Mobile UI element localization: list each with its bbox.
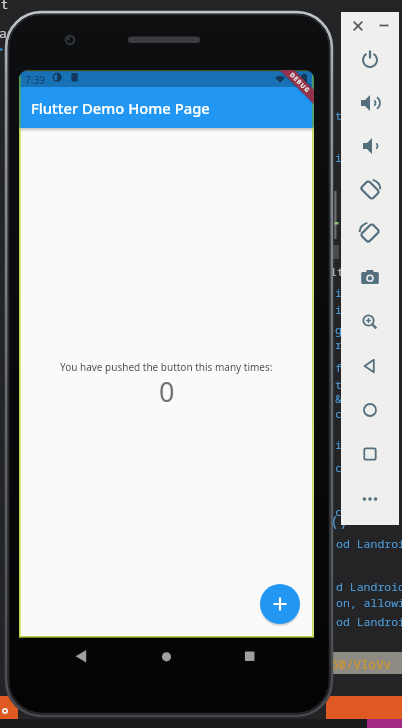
button[interactable] (353, 129, 387, 163)
staticText: c (335, 504, 342, 520)
staticText: ai (0, 24, 15, 42)
staticText: Flutter Demo Home Page (31, 98, 210, 118)
staticText: () (330, 510, 349, 530)
staticText: od Landroi (336, 536, 402, 552)
staticText: i (335, 437, 342, 453)
staticText: od Landroi (336, 614, 402, 630)
staticText: t (335, 377, 342, 393)
button[interactable] (64, 642, 98, 670)
staticText: on, allowi (336, 595, 402, 611)
button[interactable] (353, 261, 387, 295)
button[interactable] (260, 584, 300, 624)
staticText: lt (330, 264, 344, 280)
staticText: g (335, 322, 342, 338)
button[interactable] (353, 216, 387, 250)
staticText: r (335, 337, 342, 353)
staticText: d Landroid (336, 579, 402, 595)
button[interactable] (353, 42, 387, 76)
button[interactable] (149, 642, 183, 670)
button[interactable] (232, 642, 266, 670)
button[interactable] (353, 305, 387, 339)
button[interactable] (349, 17, 367, 35)
staticText: You have pushed the button this many tim… (60, 360, 273, 374)
staticText: f (335, 360, 342, 376)
staticText: DEBUG (288, 71, 312, 95)
staticText: i (335, 285, 342, 301)
staticText: 7:39 (25, 73, 45, 87)
staticText: t (1, 0, 9, 12)
staticText: & (335, 391, 342, 407)
staticText: c (335, 460, 342, 476)
staticText: i (335, 302, 342, 318)
button[interactable] (353, 482, 387, 516)
staticText: t (335, 108, 342, 124)
button[interactable] (353, 393, 387, 427)
button[interactable] (375, 17, 393, 35)
button[interactable] (353, 349, 387, 383)
button[interactable] (353, 437, 387, 471)
staticText: 0 (159, 373, 175, 410)
button[interactable] (353, 173, 387, 207)
button[interactable] (353, 86, 387, 120)
staticText: i (335, 150, 342, 166)
staticText: c (335, 406, 342, 422)
staticText: 60/VIoVv (331, 656, 392, 673)
